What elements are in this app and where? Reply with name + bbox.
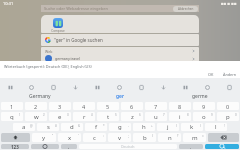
button[interactable]: l	[205, 123, 227, 131]
button[interactable]: Space	[79, 144, 177, 149]
staticText: Ändern	[223, 72, 237, 77]
staticText: o	[202, 113, 206, 121]
button[interactable]: t	[97, 112, 119, 121]
button[interactable]: 3	[49, 102, 71, 110]
button[interactable]: n	[158, 133, 181, 142]
staticText: k	[190, 123, 194, 131]
button[interactable]: germany.travel	[41, 55, 199, 62]
staticText: j	[167, 123, 169, 131]
staticText: +	[151, 124, 153, 128]
staticText: 3	[58, 103, 62, 110]
button[interactable]: f	[85, 123, 107, 131]
button[interactable]: d	[61, 123, 83, 131]
button[interactable]: s	[37, 123, 59, 131]
button[interactable]: Emoji kitchen	[174, 78, 196, 91]
staticText: Compose	[51, 29, 65, 33]
button[interactable]: .	[179, 144, 203, 149]
button[interactable]: 0	[217, 102, 239, 110]
staticText: 7	[163, 113, 165, 117]
staticText: ,	[68, 144, 70, 149]
button[interactable]: 1	[1, 102, 23, 110]
button[interactable]: Abbrechen	[173, 6, 198, 12]
staticText: s	[47, 123, 50, 131]
button[interactable]: ,	[61, 144, 77, 149]
button[interactable]: 8	[169, 102, 191, 110]
button[interactable]: 2	[25, 102, 47, 110]
button[interactable]: Emoji	[31, 144, 59, 149]
staticText: @	[30, 124, 33, 128]
button[interactable]: m	[183, 133, 206, 142]
button[interactable]: OK	[208, 72, 214, 77]
button[interactable]: x	[58, 133, 81, 142]
button[interactable]: Theme	[21, 78, 42, 91]
staticText: z	[131, 113, 134, 121]
button[interactable]: c	[83, 133, 106, 142]
staticText: 4	[82, 103, 86, 110]
button[interactable]: germe	[160, 91, 240, 101]
button[interactable]: Settings	[108, 78, 130, 91]
button[interactable]: z	[121, 112, 143, 121]
staticText: v	[118, 134, 122, 142]
button[interactable]: w	[25, 112, 47, 121]
button[interactable]: 7	[145, 102, 167, 110]
staticText: )	[200, 124, 201, 128]
button[interactable]: Shift	[1, 133, 30, 142]
staticText: i	[179, 113, 181, 121]
button[interactable]: e	[49, 112, 71, 121]
button[interactable]: 6	[121, 102, 143, 110]
button[interactable]: g	[109, 123, 131, 131]
staticText: e	[58, 113, 62, 121]
button[interactable]: 123	[1, 144, 29, 149]
staticText: 10:31	[3, 1, 14, 6]
staticText: "	[52, 134, 54, 138]
staticText: *	[103, 124, 105, 128]
button[interactable]: k	[181, 123, 203, 131]
button[interactable]: o	[193, 112, 215, 121]
button[interactable]: ger	[80, 91, 160, 101]
staticText: ▪▪ ▪ ▪▪	[221, 1, 237, 6]
button[interactable]: Clipboard	[0, 78, 21, 91]
staticText: !	[224, 124, 225, 128]
button[interactable]: Compose	[41, 15, 199, 33]
staticText: 123	[11, 144, 19, 149]
button[interactable]: j	[157, 123, 179, 131]
button[interactable]: b	[133, 133, 156, 142]
staticText: g	[118, 123, 122, 131]
staticText: 6	[130, 103, 134, 110]
button[interactable]: More	[218, 78, 240, 91]
button[interactable]: "ger" in Google suchen	[41, 34, 199, 46]
staticText: 7	[154, 103, 158, 110]
button[interactable]: p	[217, 112, 239, 121]
staticText: Wörterbuch (gesperrt): Deutsch (DE), Eng…	[4, 64, 92, 69]
button[interactable]: a	[13, 123, 35, 131]
button[interactable]: GIF	[64, 78, 86, 91]
staticText: #	[55, 124, 57, 128]
staticText: 8	[178, 103, 182, 110]
button[interactable]: r	[73, 112, 95, 121]
button[interactable]: y	[32, 133, 56, 142]
button[interactable]: i	[169, 112, 191, 121]
button[interactable]: Text edit	[130, 78, 152, 91]
button[interactable]: q	[1, 112, 23, 121]
staticText: d	[70, 123, 74, 131]
staticText: p	[226, 113, 230, 121]
button[interactable]: Voice	[152, 78, 174, 91]
button[interactable]: Search	[205, 144, 239, 149]
staticText: '	[78, 134, 79, 138]
button[interactable]: Sticker	[42, 78, 64, 91]
staticText: 1	[10, 103, 14, 110]
button[interactable]: Germany	[0, 91, 80, 101]
staticText: y	[42, 134, 46, 142]
button[interactable]: Translate	[86, 78, 108, 91]
button[interactable]: v	[108, 133, 131, 142]
button[interactable]: h	[133, 123, 155, 131]
button[interactable]: 5	[97, 102, 119, 110]
staticText: h	[142, 123, 146, 131]
button[interactable]: u	[145, 112, 167, 121]
button[interactable]: Search	[196, 78, 218, 91]
button[interactable]: 4	[73, 102, 95, 110]
staticText: germany.travel	[55, 56, 80, 61]
button[interactable]: Backspace	[208, 133, 239, 142]
button[interactable]: Ändern	[223, 72, 237, 77]
button[interactable]: 9	[193, 102, 215, 110]
